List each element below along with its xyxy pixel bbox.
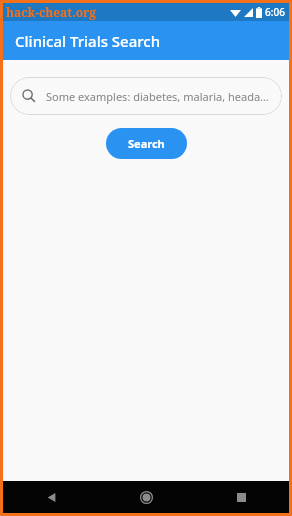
button[interactable]: Search (106, 128, 187, 159)
button[interactable]: Back (3, 481, 99, 513)
button[interactable]: Some examples: diabetes, malaria, headac… (10, 77, 282, 115)
staticText: Some examples: diabetes, malaria, headac… (46, 89, 270, 104)
button[interactable]: Recent apps (194, 481, 289, 513)
button[interactable]: Home (99, 481, 194, 513)
staticText: Search (128, 136, 165, 151)
staticText: hack-cheat.org (6, 4, 97, 20)
staticText: Clinical Trials Search (15, 31, 161, 51)
staticText: 6:06 (265, 5, 285, 19)
